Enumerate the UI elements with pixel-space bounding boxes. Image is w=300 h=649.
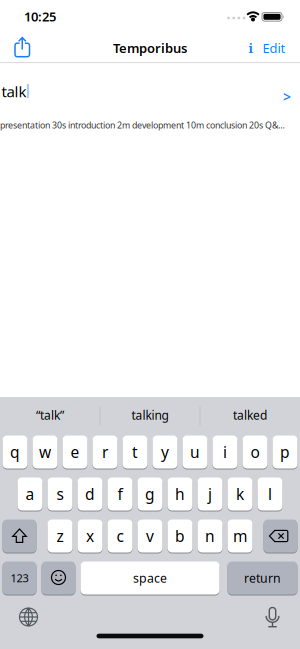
button[interactable]: i: [242, 36, 260, 60]
button[interactable]: i: [212, 434, 237, 469]
staticText: a: [25, 483, 34, 504]
staticText: s: [56, 483, 63, 504]
staticText: i: [223, 441, 227, 462]
button[interactable]: k: [227, 476, 252, 511]
staticText: Temporibus: [113, 39, 187, 57]
staticText: return: [244, 570, 281, 586]
button[interactable]: r: [92, 434, 117, 469]
staticText: t: [132, 441, 138, 462]
staticText: n: [205, 525, 215, 546]
staticText: x: [86, 525, 94, 546]
staticText: >: [283, 87, 291, 106]
button[interactable]: [263, 518, 297, 553]
staticText: v: [146, 525, 154, 546]
button[interactable]: l: [257, 476, 282, 511]
staticText: b: [175, 525, 185, 546]
button[interactable]: x: [77, 518, 102, 553]
button[interactable]: m: [227, 518, 252, 553]
button[interactable]: s: [47, 476, 72, 511]
button[interactable]: b: [167, 518, 192, 553]
button[interactable]: Edit: [256, 36, 292, 60]
button[interactable]: a: [17, 476, 42, 511]
staticText: h: [175, 483, 185, 504]
button[interactable]: [41, 560, 75, 595]
button[interactable]: d: [77, 476, 102, 511]
button[interactable]: “talk”: [1, 398, 99, 432]
staticText: f: [117, 483, 122, 504]
button[interactable]: e: [62, 434, 87, 469]
button[interactable]: q: [2, 434, 27, 469]
staticText: talking: [131, 407, 168, 423]
button[interactable]: z: [47, 518, 72, 553]
button[interactable]: t: [122, 434, 147, 469]
staticText: p: [280, 441, 290, 462]
staticText: talk: [1, 81, 26, 102]
button[interactable]: o: [242, 434, 267, 469]
button[interactable]: h: [167, 476, 192, 511]
button[interactable]: [2, 518, 36, 553]
button[interactable]: 123: [2, 560, 36, 595]
button[interactable]: return: [227, 560, 297, 595]
button[interactable]: talked: [201, 398, 299, 432]
staticText: u: [190, 441, 200, 462]
staticText: k: [236, 483, 244, 504]
staticText: space: [133, 570, 167, 586]
staticText: g: [145, 483, 155, 504]
button[interactable]: y: [152, 434, 177, 469]
button[interactable]: [261, 604, 283, 630]
staticText: j: [208, 483, 212, 504]
button[interactable]: w: [32, 434, 57, 469]
button[interactable]: >: [275, 84, 299, 108]
staticText: “talk”: [36, 407, 64, 423]
button[interactable]: [17, 606, 39, 628]
staticText: w: [39, 441, 51, 462]
staticText: m: [233, 525, 247, 546]
staticText: d: [85, 483, 95, 504]
button[interactable]: p: [272, 434, 297, 469]
staticText: 123: [10, 570, 28, 585]
staticText: 10:25: [24, 8, 56, 25]
staticText: i: [248, 39, 253, 57]
staticText: e: [70, 441, 79, 462]
staticText: z: [56, 525, 63, 546]
staticText: q: [10, 441, 20, 462]
button[interactable]: [10, 36, 34, 60]
staticText: presentation 30s introduction 2m develop…: [0, 119, 285, 131]
staticText: o: [250, 441, 259, 462]
staticText: y: [161, 441, 169, 462]
button[interactable]: f: [107, 476, 132, 511]
staticText: Edit: [262, 39, 285, 57]
button[interactable]: n: [197, 518, 222, 553]
button[interactable]: v: [137, 518, 162, 553]
staticText: l: [268, 483, 272, 504]
button[interactable]: g: [137, 476, 162, 511]
button[interactable]: space: [80, 560, 219, 595]
staticText: r: [102, 441, 108, 462]
button[interactable]: j: [197, 476, 222, 511]
staticText: talked: [233, 407, 267, 423]
button[interactable]: u: [182, 434, 207, 469]
button[interactable]: talking: [101, 398, 199, 432]
button[interactable]: c: [107, 518, 132, 553]
staticText: c: [116, 525, 123, 546]
